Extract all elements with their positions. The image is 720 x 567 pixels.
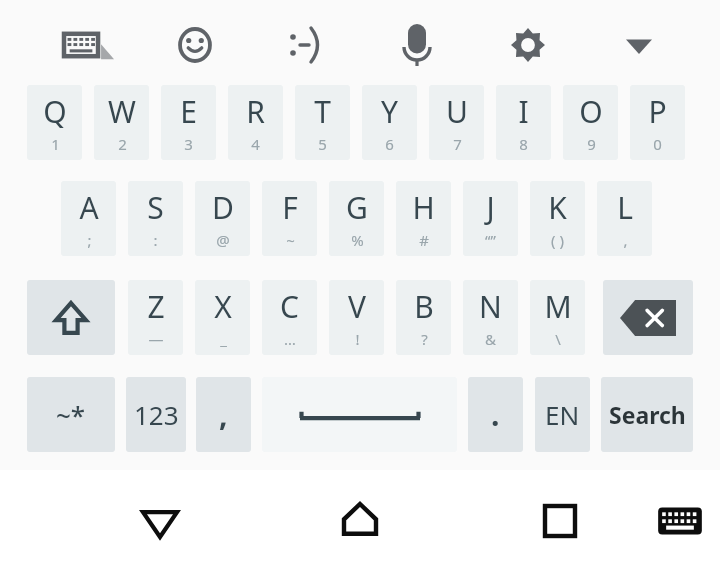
staticText: P [648, 91, 667, 132]
button[interactable]: Q [27, 85, 82, 160]
button[interactable]: E [161, 85, 216, 160]
button[interactable]: Symbols [27, 377, 115, 452]
staticText: T [314, 91, 331, 132]
staticText: , [219, 394, 228, 435]
staticText: D [212, 187, 234, 228]
button[interactable]: Home [330, 495, 390, 547]
button[interactable]: F [262, 181, 317, 256]
button[interactable]: P [630, 85, 685, 160]
staticText: 123 [134, 397, 179, 432]
staticText: 9 [587, 134, 596, 154]
button[interactable]: M [530, 280, 585, 355]
button[interactable]: Numbers [126, 377, 186, 452]
button[interactable]: O [563, 85, 618, 160]
button[interactable]: Emoticon [283, 25, 329, 65]
staticText: ~* [56, 397, 86, 432]
button[interactable]: Language [535, 377, 590, 452]
staticText: _ [220, 329, 227, 349]
button[interactable]: K [530, 181, 585, 256]
staticText: B [414, 286, 434, 327]
staticText: Y [381, 91, 398, 132]
staticText: Search [609, 399, 686, 430]
staticText: 1 [51, 134, 60, 154]
staticText: 8 [519, 134, 528, 154]
button[interactable]: Space [262, 377, 457, 452]
staticText: L [617, 187, 633, 228]
button[interactable]: X [195, 280, 250, 355]
staticText: — [148, 329, 164, 349]
button[interactable]: Recents [531, 495, 589, 547]
staticText: , [623, 230, 628, 250]
staticText: M [544, 286, 572, 327]
staticText: C [280, 286, 299, 327]
button[interactable]: U [429, 85, 484, 160]
button[interactable]: Switch keyboard [62, 25, 108, 65]
staticText: H [412, 187, 435, 228]
staticText: 4 [251, 134, 260, 154]
staticText: U [446, 91, 468, 132]
button[interactable]: V [329, 280, 384, 355]
staticText: E [180, 91, 197, 132]
button[interactable]: S [128, 181, 183, 256]
button[interactable]: Comma [196, 377, 251, 452]
button[interactable]: Y [362, 85, 417, 160]
staticText: K [548, 187, 567, 228]
staticText: % [351, 230, 364, 250]
staticText: I [518, 91, 529, 132]
staticText: G [346, 187, 368, 228]
button[interactable]: J [463, 181, 518, 256]
button[interactable]: W [94, 85, 149, 160]
staticText: ~ [286, 230, 295, 250]
staticText: ; [87, 230, 92, 250]
staticText: ! [355, 329, 360, 349]
staticText: 0 [653, 134, 662, 154]
staticText: EN [545, 397, 580, 432]
staticText: Z [147, 286, 165, 327]
staticText: @ [216, 230, 230, 250]
button[interactable]: Back [130, 495, 190, 547]
staticText: # [419, 230, 429, 250]
staticText: X [214, 286, 232, 327]
button[interactable]: Hide keyboard [652, 495, 708, 547]
staticText: J [486, 187, 495, 228]
staticText: 3 [184, 134, 193, 154]
button[interactable]: T [295, 85, 350, 160]
staticText: & [485, 329, 496, 349]
staticText: … [284, 329, 296, 349]
button[interactable]: Search [601, 377, 693, 452]
staticText: 5 [318, 134, 327, 154]
staticText: : [153, 230, 158, 250]
button[interactable]: A [61, 181, 116, 256]
staticText: ( ) [551, 230, 564, 250]
button[interactable]: Shift [27, 280, 115, 355]
staticText: R [246, 91, 265, 132]
button[interactable]: Voice input [396, 25, 438, 65]
button[interactable]: I [496, 85, 551, 160]
staticText: N [479, 286, 502, 327]
staticText: A [79, 187, 99, 228]
staticText: 6 [385, 134, 394, 154]
staticText: ? [421, 329, 428, 349]
staticText: 2 [118, 134, 127, 154]
button[interactable]: R [228, 85, 283, 160]
button[interactable]: More [618, 25, 660, 65]
button[interactable]: Settings [507, 25, 549, 65]
button[interactable]: B [396, 280, 451, 355]
button[interactable]: H [396, 181, 451, 256]
staticText: Q [43, 91, 67, 132]
staticText: . [491, 394, 500, 435]
button[interactable]: C [262, 280, 317, 355]
button[interactable]: Period [468, 377, 523, 452]
button[interactable]: L [597, 181, 652, 256]
button[interactable]: D [195, 181, 250, 256]
staticText: F [282, 187, 298, 228]
staticText: W [108, 91, 136, 132]
button[interactable]: Emoji [173, 25, 217, 65]
button[interactable]: Backspace [603, 280, 693, 355]
button[interactable]: G [329, 181, 384, 256]
staticText: \ [555, 329, 561, 349]
button[interactable]: N [463, 280, 518, 355]
staticText: S [147, 187, 164, 228]
button[interactable]: Z [128, 280, 183, 355]
staticText: V [348, 286, 366, 327]
